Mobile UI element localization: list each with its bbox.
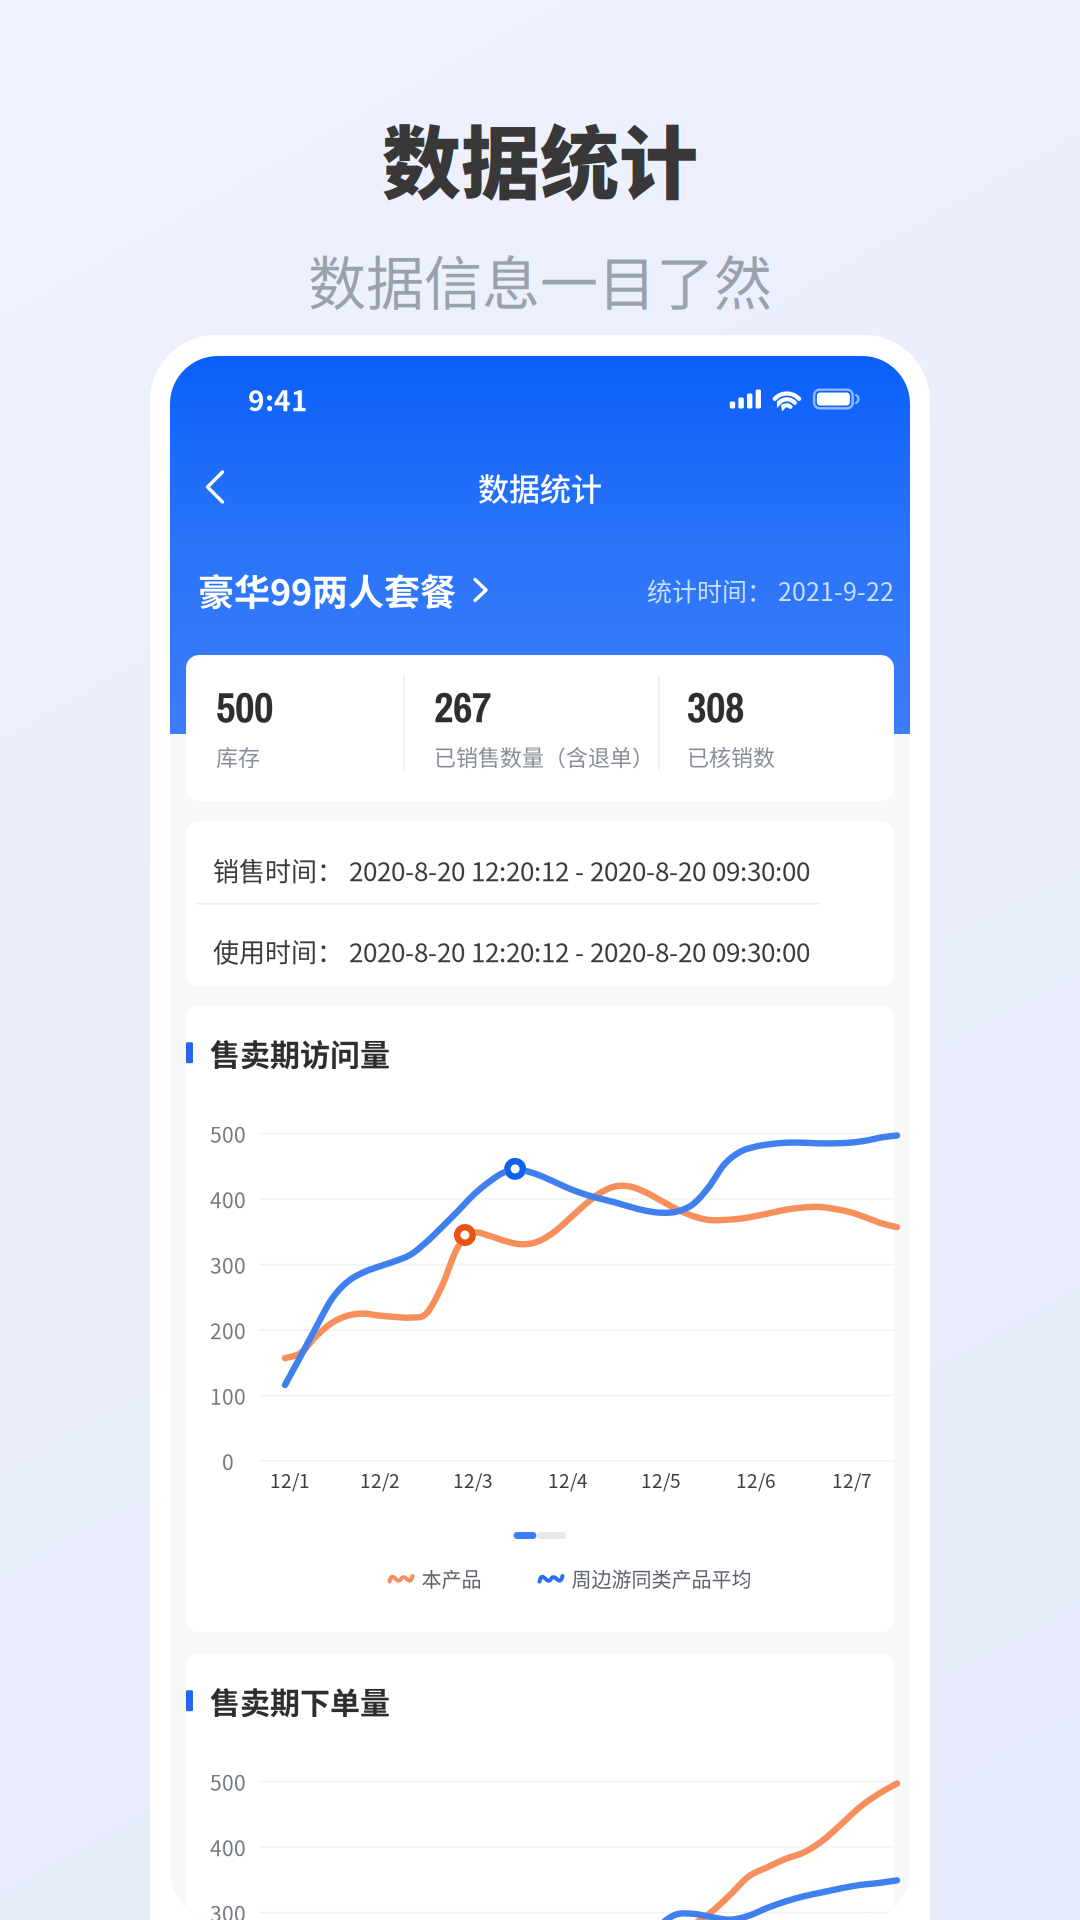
staticText: 售卖期访问量 <box>210 1031 390 1074</box>
staticText: 12/5 <box>641 1466 681 1493</box>
staticText: 数据统计 <box>382 101 698 215</box>
staticText: 数据信息一目了然 <box>308 237 772 321</box>
staticText: 已核销数 <box>687 740 775 772</box>
staticText: 12/3 <box>453 1466 493 1493</box>
staticText: 统计时间： 2021-9-22 <box>647 572 894 608</box>
staticText: 12/2 <box>360 1466 400 1493</box>
staticText: 使用时间： 2020-8-20 12:20:12 - 2020-8-20 09:… <box>213 932 810 970</box>
staticText: 本产品 <box>421 1564 481 1593</box>
staticText: 500 <box>216 678 273 735</box>
button[interactable]: 豪华99两人套餐 <box>198 561 486 619</box>
staticText: 300 <box>210 1897 246 1920</box>
staticText: 销售时间： 2020-8-20 12:20:12 - 2020-8-20 09:… <box>213 851 810 889</box>
staticText: 12/1 <box>270 1466 310 1493</box>
staticText: 400 <box>210 1184 246 1214</box>
staticText: 数据统计 <box>478 465 602 509</box>
staticText: 库存 <box>216 740 260 772</box>
staticText: 豪华99两人套餐 <box>198 564 456 616</box>
staticText: 售卖期下单量 <box>210 1679 390 1722</box>
staticText: 200 <box>210 1315 246 1345</box>
staticText: 267 <box>434 678 491 735</box>
staticText: 300 <box>210 1249 246 1280</box>
staticText: 500 <box>210 1766 246 1797</box>
staticText: 12/6 <box>736 1466 776 1493</box>
button[interactable]: Back <box>184 456 246 518</box>
staticText: 0 <box>222 1446 234 1476</box>
staticText: 9:41 <box>248 379 308 419</box>
staticText: 500 <box>210 1118 246 1149</box>
staticText: 12/4 <box>548 1466 588 1493</box>
staticText: 周边游同类产品平均 <box>571 1564 751 1593</box>
staticText: 已销售数量（含退单） <box>434 740 654 772</box>
staticText: 100 <box>210 1380 246 1411</box>
staticText: 308 <box>687 678 744 735</box>
staticText: 12/7 <box>832 1466 872 1493</box>
staticText: 400 <box>210 1832 246 1862</box>
